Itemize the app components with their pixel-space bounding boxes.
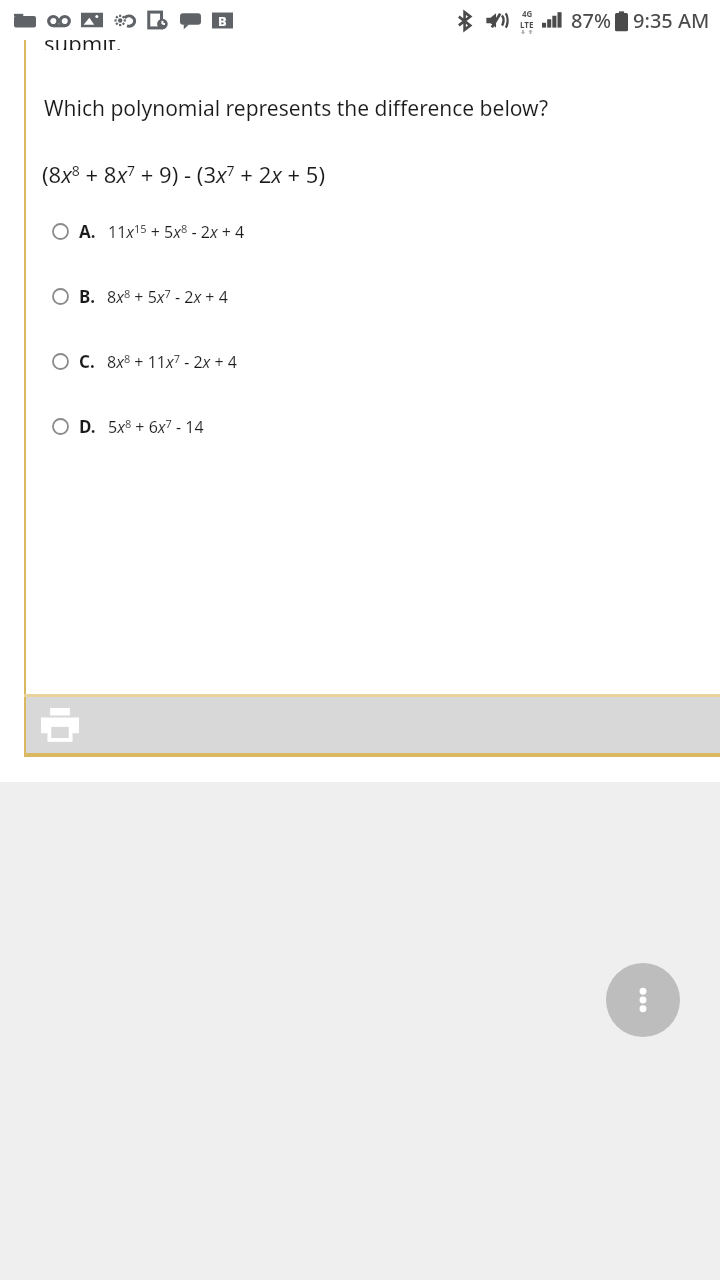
staticText: 8x8 + 11x7 - 2x + 4: [107, 351, 237, 373]
staticText: 4G: [522, 8, 533, 19]
staticText: (8x8 + 8x7 + 9) - (3x7 + 2x + 5): [42, 159, 326, 189]
staticText: 9:35 AM: [633, 7, 710, 34]
staticText: C.: [79, 350, 95, 373]
button[interactable]: B.: [0, 285, 720, 308]
button[interactable]: D.: [0, 415, 720, 438]
button[interactable]: C.: [0, 350, 720, 373]
button[interactable]: Print: [38, 703, 82, 747]
staticText: 11x15 + 5x8 - 2x + 4: [108, 221, 245, 243]
staticText: B: [218, 12, 227, 30]
button[interactable]: More options: [606, 963, 680, 1037]
staticText: LTE: [520, 19, 534, 30]
staticText: A.: [79, 220, 96, 243]
staticText: Which polynomial represents the differen…: [44, 94, 549, 123]
staticText: 8x8 + 5x7 - 2x + 4: [107, 286, 228, 308]
staticText: D.: [79, 415, 96, 438]
staticText: submit.: [44, 40, 122, 50]
staticText: 87%: [571, 7, 611, 34]
button[interactable]: A.: [0, 220, 720, 243]
staticText: B.: [79, 285, 95, 308]
staticText: 5x8 + 6x7 - 14: [108, 416, 204, 438]
